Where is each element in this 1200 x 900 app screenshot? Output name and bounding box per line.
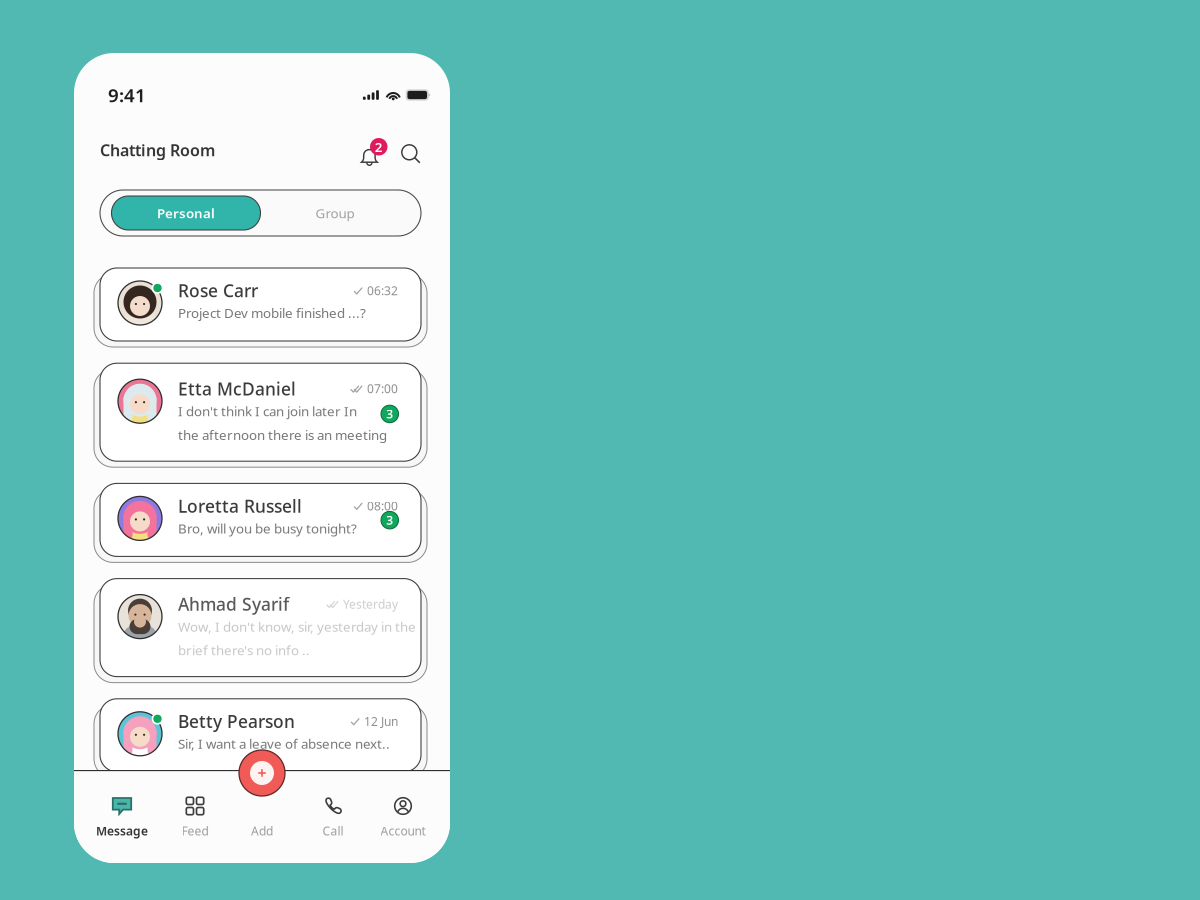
staticText: 3 bbox=[386, 406, 393, 422]
staticText: Sir, I want a leave of absence next.. bbox=[178, 735, 390, 752]
staticText: Betty Pearson bbox=[178, 710, 295, 733]
staticText: Feed bbox=[181, 823, 208, 839]
staticText: Message bbox=[96, 823, 148, 839]
button[interactable]: Account bbox=[361, 796, 445, 848]
staticText: Project Dev mobile finished ...? bbox=[178, 304, 366, 322]
staticText: Call bbox=[322, 823, 343, 839]
staticText: 3 bbox=[386, 512, 393, 528]
button[interactable]: Add bbox=[237, 748, 287, 798]
button[interactable]: Rose Carr bbox=[94, 268, 427, 347]
staticText: I don't think I can join later In bbox=[178, 402, 357, 420]
staticText: Yesterday bbox=[343, 596, 398, 612]
staticText: Etta McDaniel bbox=[178, 377, 296, 400]
button[interactable]: Feed bbox=[153, 796, 237, 848]
staticText: Group bbox=[315, 204, 354, 222]
button[interactable]: Notifications bbox=[355, 136, 385, 164]
button[interactable]: Group bbox=[260, 196, 409, 230]
staticText: Ahmad Syarif bbox=[178, 593, 289, 616]
staticText: 12 Jun bbox=[364, 713, 398, 729]
staticText: Account bbox=[380, 823, 425, 839]
staticText: Chatting Room bbox=[100, 139, 215, 161]
staticText: Bro, will you be busy tonight? bbox=[178, 519, 357, 537]
staticText: Wow, I don't know, sir, yesterday in the bbox=[178, 618, 416, 635]
staticText: 06:32 bbox=[367, 282, 398, 298]
button[interactable]: Message bbox=[80, 796, 164, 848]
staticText: brief there's no info .. bbox=[178, 641, 310, 659]
staticText: 07:00 bbox=[367, 381, 398, 397]
button[interactable]: Search bbox=[398, 136, 424, 164]
staticText: Add bbox=[251, 823, 273, 839]
staticText: the afternoon there is an meeting bbox=[178, 426, 387, 444]
button[interactable]: Loretta Russell bbox=[94, 483, 427, 562]
button[interactable]: Add bbox=[220, 796, 304, 848]
button[interactable]: Ahmad Syarif bbox=[94, 579, 427, 683]
staticText: 08:00 bbox=[367, 498, 398, 514]
staticText: 9:41 bbox=[108, 83, 146, 107]
button[interactable]: Call bbox=[291, 796, 375, 848]
staticText: Loretta Russell bbox=[178, 494, 302, 517]
staticText: 2 bbox=[375, 138, 383, 156]
button[interactable]: Personal bbox=[111, 196, 260, 230]
button[interactable]: Betty Pearson bbox=[94, 699, 427, 778]
staticText: Personal bbox=[157, 204, 215, 222]
staticText: Rose Carr bbox=[178, 279, 258, 302]
button[interactable]: Etta McDaniel bbox=[94, 363, 427, 467]
